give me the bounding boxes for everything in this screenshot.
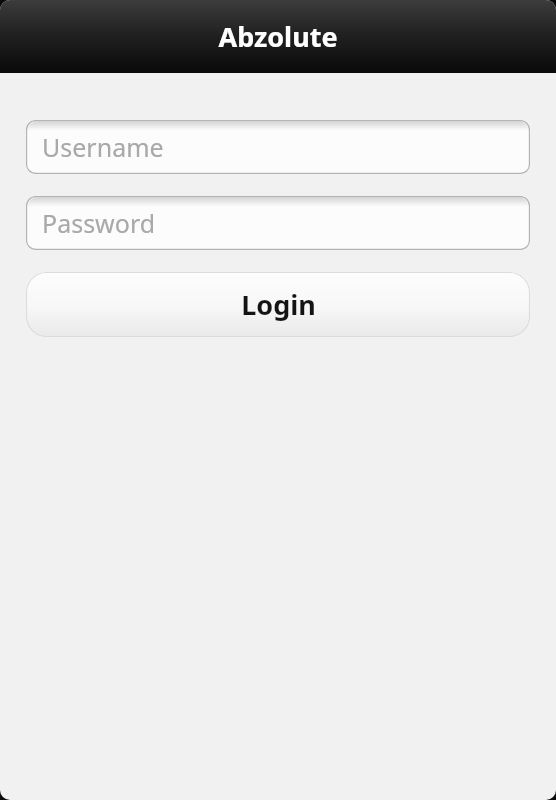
staticText: Abzolute — [218, 18, 338, 55]
staticText: Password — [42, 206, 156, 240]
button[interactable]: Username — [26, 120, 530, 174]
staticText: Username — [42, 130, 164, 164]
button[interactable]: Login — [26, 272, 530, 337]
button[interactable]: Password — [26, 196, 530, 250]
staticText: Login — [241, 286, 316, 323]
